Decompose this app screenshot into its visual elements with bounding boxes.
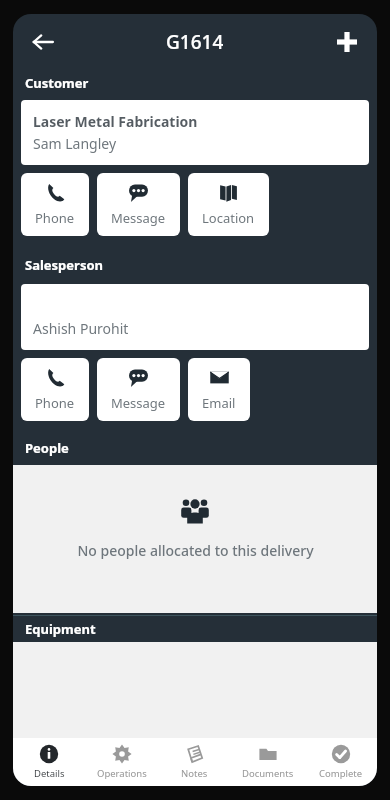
button[interactable]: Laser Metal Fabrication xyxy=(21,100,369,165)
staticText: Customer xyxy=(25,74,89,92)
button[interactable]: Ashish Purohit xyxy=(21,284,369,350)
staticText: Equipment xyxy=(25,620,96,638)
staticText: Salesperson xyxy=(25,256,104,274)
staticText: Notes xyxy=(181,767,208,780)
button[interactable]: Complete xyxy=(304,740,377,784)
button[interactable]: Add xyxy=(325,20,369,64)
staticText: Operations xyxy=(97,767,147,780)
button[interactable]: Message xyxy=(97,358,180,421)
button[interactable]: Location xyxy=(188,173,269,236)
button[interactable]: Email xyxy=(188,358,250,421)
staticText: Location xyxy=(202,209,255,227)
button[interactable]: Documents xyxy=(231,740,304,784)
staticText: Phone xyxy=(35,209,75,227)
button[interactable]: Phone xyxy=(21,173,89,236)
staticText: Complete xyxy=(319,767,363,780)
staticText: People xyxy=(25,439,69,457)
staticText: Email xyxy=(202,394,236,412)
staticText: Message xyxy=(111,209,166,227)
staticText: Ashish Purohit xyxy=(33,319,129,338)
button[interactable]: Phone xyxy=(21,358,89,421)
staticText: Laser Metal Fabrication xyxy=(33,112,198,131)
button[interactable]: Back xyxy=(21,20,65,64)
staticText: No people allocated to this delivery xyxy=(77,541,314,560)
staticText: Message xyxy=(111,394,166,412)
button[interactable]: Operations xyxy=(85,740,158,784)
button[interactable]: Message xyxy=(97,173,180,236)
button[interactable]: Details xyxy=(13,740,85,784)
staticText: Details xyxy=(34,767,65,780)
staticText: Documents xyxy=(242,767,294,780)
staticText: G1614 xyxy=(166,29,224,55)
staticText: Phone xyxy=(35,394,75,412)
button[interactable]: Notes xyxy=(158,740,231,784)
staticText: Sam Langley xyxy=(33,134,117,153)
